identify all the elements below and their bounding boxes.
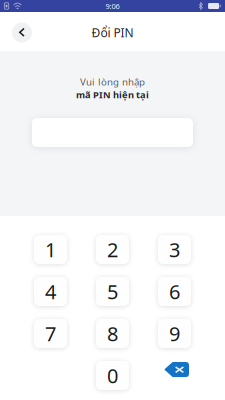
staticText: Đổi PIN (91, 24, 133, 41)
staticText: Vui lòng nhập (80, 75, 145, 88)
staticText: 0 (107, 362, 118, 389)
button[interactable]: Back (12, 22, 32, 42)
button[interactable]: Delete (158, 361, 191, 390)
button[interactable]: 3 (158, 235, 191, 264)
staticText: 9 (169, 320, 180, 347)
button[interactable]: 8 (96, 319, 129, 348)
staticText: 3 (169, 236, 180, 263)
button[interactable]: 6 (158, 277, 191, 306)
staticText: 5 (107, 278, 118, 305)
staticText: 6 (169, 278, 180, 305)
staticText: mã PIN hiện tại (76, 88, 149, 101)
button[interactable]: 2 (96, 235, 129, 264)
staticText: 8 (107, 320, 118, 347)
button[interactable]: 4 (34, 277, 67, 306)
button[interactable]: 5 (96, 277, 129, 306)
staticText: 9:06 (105, 1, 119, 11)
button[interactable]: 7 (34, 319, 67, 348)
staticText: 2 (107, 236, 118, 263)
staticText: 4 (45, 278, 56, 305)
staticText: 7 (45, 320, 56, 347)
button[interactable]: 1 (34, 235, 67, 264)
button[interactable]: 9 (158, 319, 191, 348)
staticText: 1 (45, 236, 56, 263)
button[interactable]: 0 (96, 361, 129, 390)
